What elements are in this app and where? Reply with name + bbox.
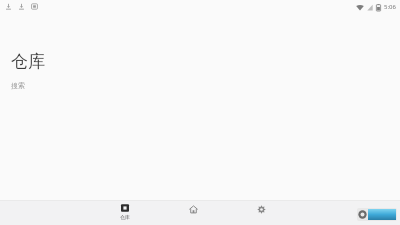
button[interactable]: 仓库 [112,203,138,221]
button[interactable]: Settings [248,203,274,219]
staticText: 仓库 [120,214,130,220]
staticText: 仓库 [11,51,45,72]
button[interactable]: Home [180,203,206,219]
staticText: 搜索 [11,81,25,90]
staticText: 5:06 [384,3,396,11]
